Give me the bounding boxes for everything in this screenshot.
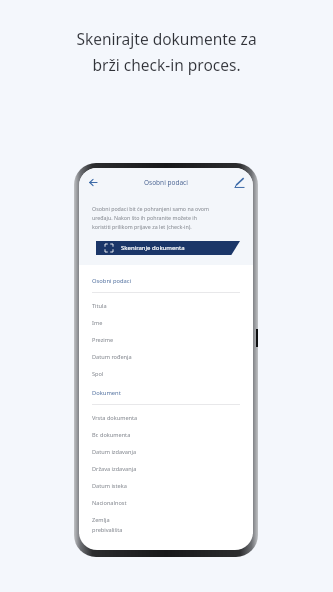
staticText: Spol: [92, 370, 104, 378]
button[interactable]: Zemlja: [79, 511, 253, 534]
staticText: Osobni podaci bit će pohranjeni samo na …: [92, 205, 209, 212]
button[interactable]: Skeniranje dokumenta: [96, 241, 240, 255]
staticText: Prezime: [92, 336, 114, 344]
button[interactable]: Titula: [79, 297, 253, 314]
staticText: Datum izdavanja: [92, 448, 137, 456]
button[interactable]: Back: [82, 171, 104, 193]
button[interactable]: Datum rođenja: [79, 348, 253, 365]
button[interactable]: Datum izdavanja: [79, 443, 253, 460]
staticText: Nacionalnost: [92, 499, 127, 507]
staticText: Osobni podaci: [144, 178, 188, 187]
button[interactable]: Edit: [229, 172, 249, 192]
button[interactable]: Vrsta dokumenta: [79, 409, 253, 426]
staticText: Br. dokumenta: [92, 431, 131, 439]
staticText: brži check-in proces.: [92, 54, 241, 75]
staticText: Datum isteka: [92, 482, 127, 490]
staticText: uređaju. Nakon što ih pohranite možete i…: [92, 214, 197, 221]
staticText: Ime: [92, 319, 103, 327]
staticText: Dokument: [92, 389, 121, 397]
button[interactable]: Država izdavanja: [79, 460, 253, 477]
staticText: Skenirajte dokumente za: [76, 28, 257, 49]
staticText: Titula: [92, 302, 107, 310]
staticText: prebivališta: [92, 526, 123, 534]
staticText: Osobni podaci: [92, 277, 132, 285]
button[interactable]: Br. dokumenta: [79, 426, 253, 443]
staticText: koristiti prilikom prijave za let (check…: [92, 223, 192, 230]
button[interactable]: Prezime: [79, 331, 253, 348]
button[interactable]: Spol: [79, 365, 253, 382]
staticText: Datum rođenja: [92, 353, 132, 361]
staticText: Država izdavanja: [92, 465, 137, 473]
button[interactable]: Ime: [79, 314, 253, 331]
staticText: Zemlja: [92, 516, 110, 524]
button[interactable]: Nacionalnost: [79, 494, 253, 511]
staticText: Vrsta dokumenta: [92, 414, 138, 422]
button[interactable]: Datum isteka: [79, 477, 253, 494]
staticText: Skeniranje dokumenta: [121, 244, 185, 252]
